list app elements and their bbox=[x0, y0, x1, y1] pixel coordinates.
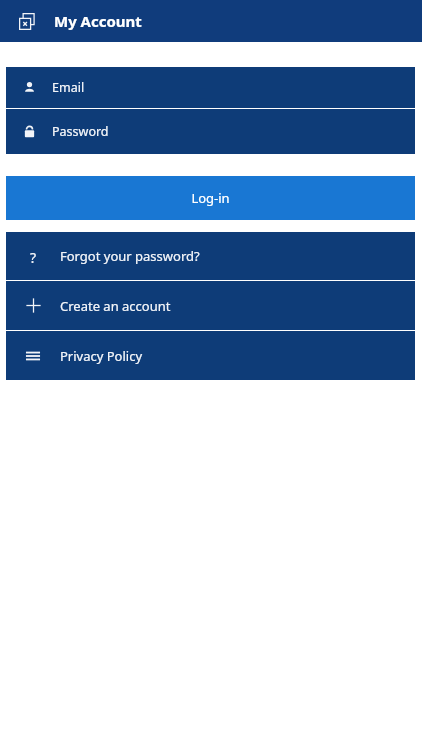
button[interactable]: ? bbox=[6, 232, 415, 280]
staticText: Email bbox=[52, 79, 85, 96]
staticText: Create an account bbox=[60, 297, 171, 315]
staticText: Log-in bbox=[191, 189, 230, 207]
button[interactable]: Log-in bbox=[6, 176, 415, 220]
button[interactable]: Close bbox=[16, 10, 38, 32]
staticText: Forgot your password? bbox=[60, 247, 200, 265]
staticText: Password bbox=[52, 123, 109, 140]
staticText: My Account bbox=[54, 11, 142, 31]
button[interactable]: Email bbox=[6, 67, 415, 108]
staticText: ? bbox=[30, 248, 37, 264]
button[interactable]: Create an account bbox=[6, 281, 415, 330]
button[interactable]: Privacy Policy bbox=[6, 331, 415, 380]
staticText: Privacy Policy bbox=[60, 347, 143, 365]
button[interactable]: Password bbox=[6, 109, 415, 154]
